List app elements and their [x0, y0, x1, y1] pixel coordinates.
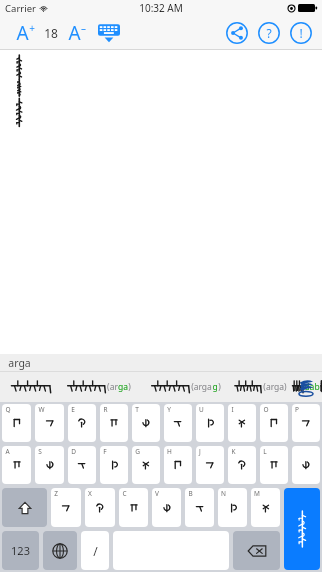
staticText: g [212, 381, 218, 393]
staticText: S [38, 447, 42, 456]
staticText: D [71, 447, 76, 456]
staticText: A [5, 447, 10, 456]
staticText: E [71, 405, 75, 414]
button[interactable]: Input method logo [293, 374, 319, 400]
button[interactable]: K [228, 446, 256, 484]
button[interactable]: X [85, 488, 115, 527]
button[interactable]: (arga [150, 372, 234, 402]
staticText: Q [5, 405, 11, 414]
button[interactable]: S [35, 446, 64, 484]
button[interactable]: V [152, 488, 181, 527]
staticText: A [68, 20, 81, 46]
button[interactable]: Y [164, 404, 192, 442]
button[interactable]: F [100, 446, 128, 484]
button[interactable]: Change language [43, 531, 77, 570]
staticText: (ar [107, 381, 118, 393]
staticText: L [263, 447, 267, 456]
staticText: W [38, 405, 45, 414]
staticText: Carrier [5, 2, 36, 15]
staticText: – [81, 21, 86, 35]
button[interactable]: Help [256, 20, 282, 46]
button[interactable]: Hide keyboard [96, 20, 122, 46]
button[interactable]: M [251, 488, 280, 527]
staticText: C [122, 489, 127, 498]
staticText: ! [299, 25, 303, 41]
button[interactable] [4, 372, 66, 402]
staticText: K [231, 447, 236, 456]
button[interactable]: B [185, 488, 214, 527]
button[interactable]: R [100, 404, 128, 442]
staticText: / [93, 543, 98, 559]
staticText: ga [118, 381, 128, 393]
staticText: G [135, 447, 140, 456]
staticText: H [167, 447, 172, 456]
button[interactable]: I [228, 404, 256, 442]
button[interactable]: J [196, 446, 224, 484]
button[interactable] [320, 372, 322, 402]
staticText: P [295, 405, 299, 414]
staticText: T [135, 405, 139, 414]
staticText: B [188, 489, 193, 498]
button[interactable]: L [260, 446, 288, 484]
staticText: U [199, 405, 204, 414]
button[interactable] [292, 446, 320, 484]
button[interactable]: Backspace [233, 531, 280, 570]
button[interactable]: Share [224, 20, 250, 46]
button[interactable]: Enter [284, 488, 320, 570]
button[interactable]: P [292, 404, 320, 442]
button[interactable]: Increase font size [14, 18, 37, 48]
button[interactable]: O [260, 404, 288, 442]
button[interactable]: Numbers [2, 531, 39, 570]
button[interactable]: (arga) [234, 372, 320, 402]
button[interactable]: Decrease font size [66, 18, 88, 48]
button[interactable]: A [2, 446, 31, 484]
staticText: dab [304, 381, 320, 393]
staticText: A [16, 20, 29, 46]
staticText: 10:32 AM [139, 1, 183, 15]
staticText: ) [128, 381, 131, 393]
button[interactable]: C [119, 488, 148, 527]
button[interactable]: H [164, 446, 192, 484]
button[interactable]: W [35, 404, 64, 442]
button[interactable]: G [132, 446, 160, 484]
staticText: 123 [11, 543, 30, 558]
staticText: O [263, 405, 269, 414]
staticText: ? [266, 25, 272, 41]
staticText: arga [8, 356, 31, 370]
button[interactable]: N [218, 488, 247, 527]
staticText: N [221, 489, 226, 498]
button[interactable]: T [132, 404, 160, 442]
staticText: Z [54, 489, 58, 498]
staticText: Y [167, 405, 171, 414]
staticText: F [103, 447, 107, 456]
button[interactable]: Information [288, 20, 314, 46]
button[interactable]: (ar [66, 372, 150, 402]
button[interactable]: Shift [2, 488, 47, 527]
staticText: I [231, 405, 234, 414]
staticText: R [103, 405, 108, 414]
button[interactable]: D [68, 446, 96, 484]
staticText: V [155, 489, 159, 498]
button[interactable]: / [81, 531, 109, 570]
staticText: ( [301, 381, 304, 393]
staticText: 18 [44, 25, 58, 41]
button[interactable]: E [68, 404, 96, 442]
staticText: X [88, 489, 92, 498]
staticText: M [254, 489, 260, 498]
button[interactable]: Z [51, 488, 81, 527]
staticText: ) [218, 381, 221, 393]
button[interactable]: Q [2, 404, 31, 442]
staticText: (arga) [263, 381, 287, 393]
staticText: (arga [191, 381, 212, 393]
staticText: J [199, 447, 201, 456]
button[interactable]: U [196, 404, 224, 442]
staticText: + [29, 21, 35, 35]
